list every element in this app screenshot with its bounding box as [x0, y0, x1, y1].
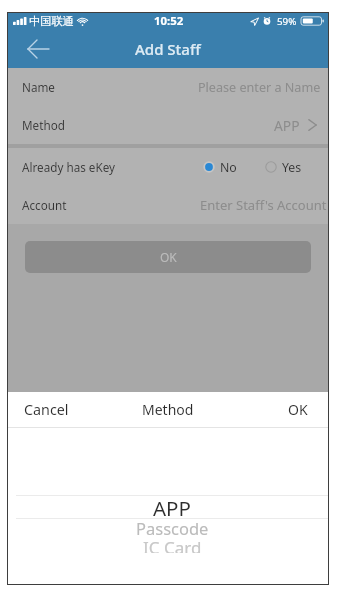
button[interactable]: Method	[8, 106, 328, 144]
staticText: Please enter a Name	[198, 79, 321, 96]
button[interactable]: Back	[21, 32, 55, 66]
button[interactable]: IC Card	[16, 538, 328, 555]
button[interactable]: APP	[16, 496, 328, 518]
staticText: Account	[22, 197, 67, 213]
staticText: Add Staff	[135, 39, 201, 59]
staticText: 10:52	[154, 13, 184, 29]
staticText: OK	[288, 400, 308, 419]
button[interactable]: OK	[194, 400, 328, 419]
staticText: 59%	[277, 15, 297, 28]
staticText: IC Card	[143, 536, 202, 553]
staticText: APP	[274, 116, 300, 135]
button[interactable]: OK	[25, 241, 311, 273]
staticText: Yes	[282, 159, 302, 176]
staticText: Method	[22, 117, 65, 133]
button[interactable]: Cancel	[8, 400, 142, 419]
staticText: APP	[153, 494, 191, 516]
staticText: 中国联通	[29, 14, 74, 28]
staticText: Name	[22, 79, 55, 95]
button[interactable]: Already has eKey	[8, 148, 328, 186]
staticText: Enter Staff's Account	[200, 196, 327, 214]
staticText: Method	[142, 400, 194, 419]
staticText: OK	[160, 249, 177, 265]
staticText: Already has eKey	[22, 159, 115, 175]
button[interactable]: Account	[8, 186, 328, 224]
staticText: No	[220, 159, 237, 176]
button[interactable]: Passcode	[16, 519, 328, 538]
button[interactable]: Name	[8, 68, 328, 106]
staticText: Passcode	[136, 517, 209, 536]
staticText: Cancel	[24, 400, 69, 419]
